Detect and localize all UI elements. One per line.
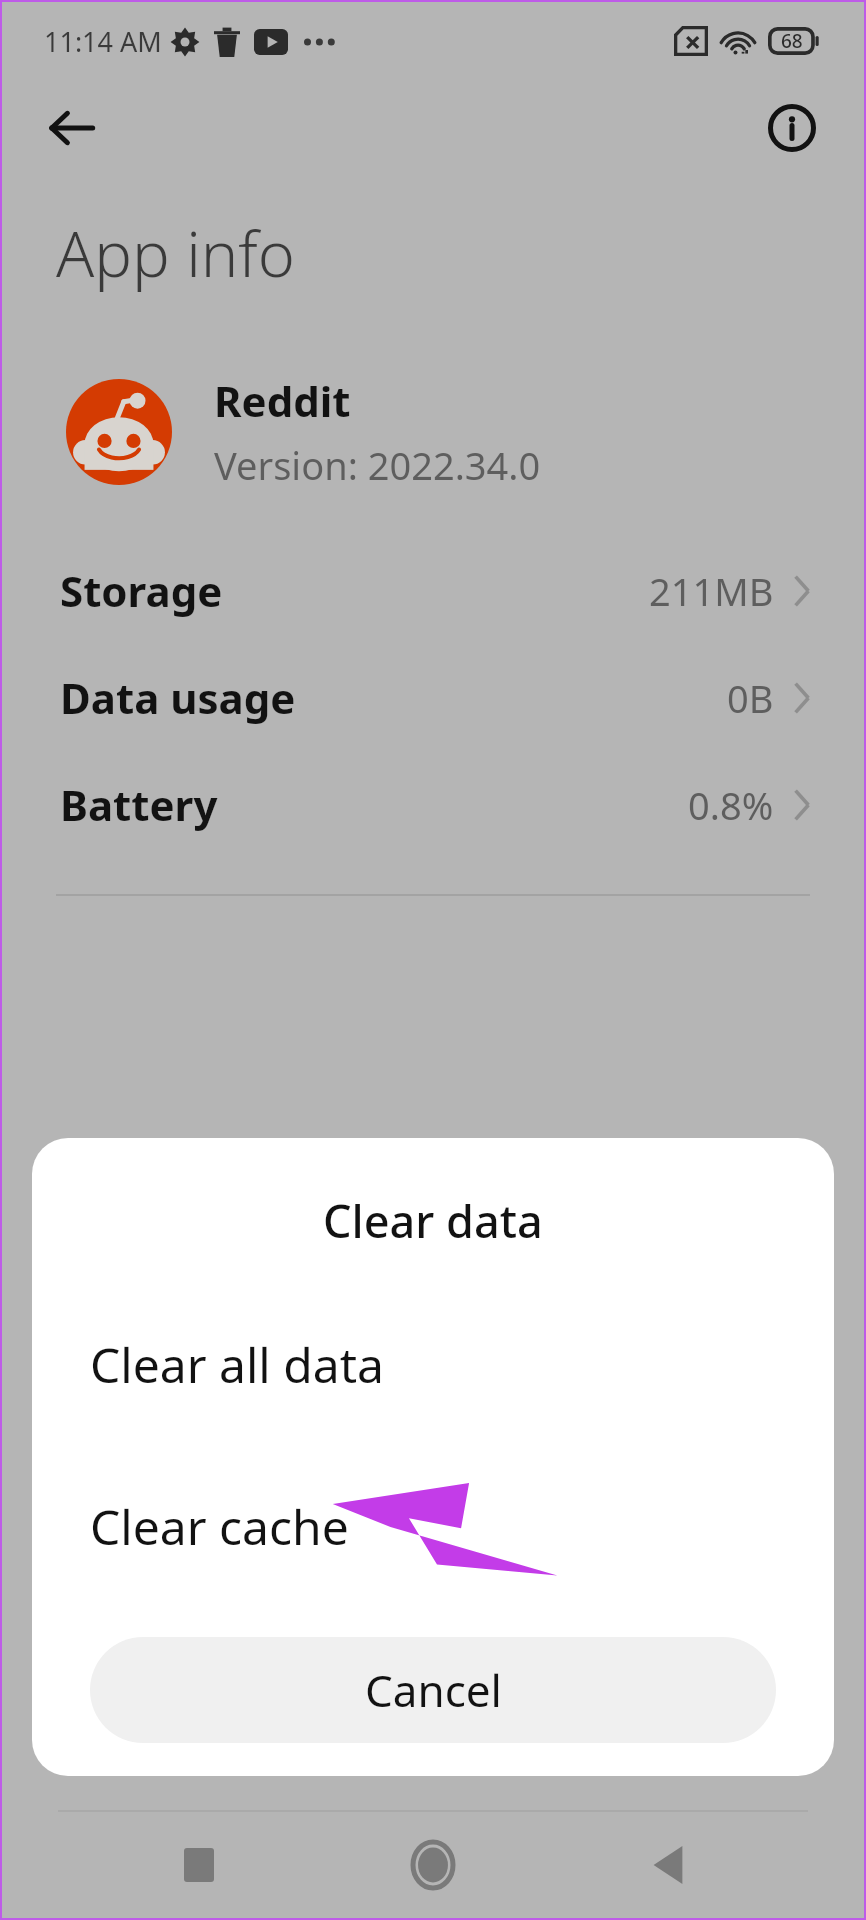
staticText: Storage	[60, 562, 223, 619]
button[interactable]: App details	[758, 94, 826, 162]
staticText: 68	[781, 28, 803, 54]
staticText: 11:14 AM	[44, 23, 162, 60]
staticText: 0.8%	[688, 779, 774, 831]
button[interactable]: Back	[630, 1827, 706, 1903]
button[interactable]: Clear cache	[32, 1471, 834, 1581]
button[interactable]: Back	[38, 94, 106, 162]
staticText: Reddit	[214, 372, 351, 429]
button[interactable]: Cancel	[90, 1637, 776, 1743]
staticText: Clear all data	[90, 1332, 384, 1397]
staticText: Data usage	[60, 669, 296, 726]
button[interactable]: Battery	[2, 751, 864, 858]
button[interactable]: Recents	[161, 1827, 237, 1903]
staticText: 0B	[727, 672, 774, 724]
button[interactable]: Storage	[2, 537, 864, 644]
button[interactable]: Clear all data	[32, 1309, 834, 1419]
staticText: Battery	[60, 776, 218, 833]
staticText: Cancel	[365, 1660, 502, 1720]
staticText: 211MB	[649, 565, 774, 617]
staticText: Clear data	[323, 1190, 543, 1251]
button[interactable]: Data usage	[2, 644, 864, 751]
button[interactable]: Home	[395, 1827, 471, 1903]
staticText: App info	[56, 210, 295, 296]
staticText: Version: 2022.34.0	[214, 439, 541, 491]
staticText: Clear cache	[90, 1494, 349, 1559]
